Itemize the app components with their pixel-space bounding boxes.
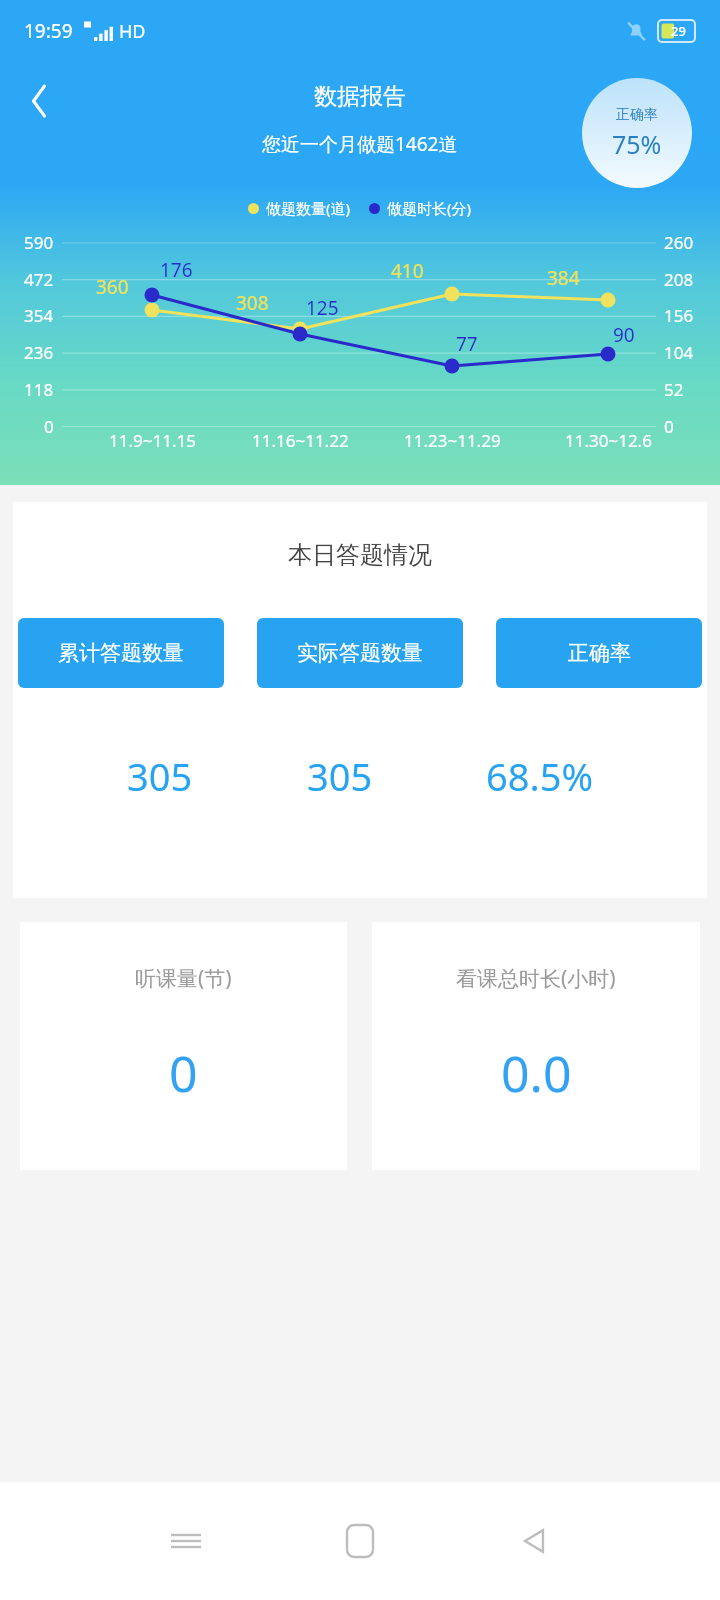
staticText: 实际答题数量 <box>297 640 423 666</box>
staticText: 156 <box>664 304 694 327</box>
staticText: 176 <box>160 257 193 283</box>
staticText: 11.30~12.6 <box>565 429 652 452</box>
staticText: 做题数量(道) <box>266 198 351 218</box>
staticText: 您近一个月做题1462道 <box>262 131 458 157</box>
staticText: 做题时长(分) <box>387 198 472 218</box>
button[interactable]: Recent apps <box>150 1505 222 1577</box>
staticText: 90 <box>613 322 635 348</box>
staticText: 正确率 <box>616 106 658 124</box>
staticText: 472 <box>24 268 54 291</box>
staticText: 11.23~11.29 <box>404 429 501 452</box>
button[interactable]: 听课量(节) <box>20 922 347 1170</box>
staticText: 看课总时长(小时) <box>456 964 616 993</box>
staticText: 正确率 <box>568 640 631 666</box>
staticText: 354 <box>24 304 54 327</box>
staticText: 68.5% <box>486 750 593 802</box>
staticText: 0 <box>169 1039 198 1107</box>
staticText: 236 <box>24 341 54 364</box>
staticText: 听课量(节) <box>135 964 232 993</box>
staticText: 308 <box>236 290 269 316</box>
staticText: 77 <box>456 331 478 357</box>
staticText: 75% <box>612 127 662 161</box>
staticText: 0.0 <box>501 1039 572 1107</box>
staticText: 410 <box>391 258 424 284</box>
button[interactable]: Home <box>324 1505 396 1577</box>
staticText: 29 <box>671 22 686 40</box>
staticText: 数据报告 <box>314 82 406 111</box>
button[interactable]: 看课总时长(小时) <box>372 922 700 1170</box>
staticText: 本日答题情况 <box>288 540 432 570</box>
staticText: 52 <box>664 378 684 401</box>
staticText: 累计答题数量 <box>58 640 184 666</box>
staticText: 305 <box>127 750 193 802</box>
staticText: 104 <box>664 341 694 364</box>
staticText: HD <box>119 19 146 44</box>
staticText: 11.16~11.22 <box>252 429 349 452</box>
staticText: 384 <box>547 265 580 291</box>
staticText: 0 <box>664 415 674 438</box>
staticText: 360 <box>96 274 129 300</box>
staticText: 0 <box>44 415 54 438</box>
button[interactable]: Back <box>498 1505 570 1577</box>
button[interactable]: 累计答题数量 <box>18 618 224 688</box>
button[interactable]: Back <box>8 70 70 132</box>
staticText: 305 <box>307 750 373 802</box>
staticText: 590 <box>24 231 54 254</box>
staticText: 11.9~11.15 <box>109 429 196 452</box>
staticText: 19:59 <box>24 18 73 44</box>
staticText: 125 <box>306 295 339 321</box>
button[interactable]: 正确率 <box>582 78 692 188</box>
staticText: 208 <box>664 268 694 291</box>
staticText: 260 <box>664 231 694 254</box>
button[interactable]: 实际答题数量 <box>257 618 463 688</box>
button[interactable]: 正确率 <box>496 618 702 688</box>
staticText: 118 <box>24 378 54 401</box>
